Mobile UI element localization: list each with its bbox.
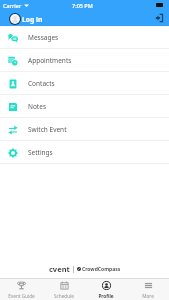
staticText: Appointments [28,56,72,65]
button[interactable]: Contacts [0,72,169,95]
button[interactable]: Notes [0,95,169,118]
button[interactable]: Profile [85,279,127,300]
staticText: Event Guide [8,293,35,299]
staticText: 7:05 PM [72,2,93,9]
staticText: cvent [49,264,70,274]
button[interactable]: Messages [0,26,169,49]
button[interactable]: Log in [0,12,47,26]
staticText: Contacts [28,79,55,88]
staticText: Schedule [54,293,74,299]
staticText: Carrier [3,2,22,9]
button[interactable]: Appointments [0,49,169,72]
staticText: Log in [22,15,43,24]
button[interactable]: Log in [151,11,166,26]
staticText: Switch Event [28,125,67,134]
staticText: CrowdCompass [82,266,121,273]
button[interactable]: Switch Event [0,118,169,141]
button[interactable]: More [127,279,169,300]
staticText: Settings [28,148,53,157]
staticText: Messages [28,33,59,42]
button[interactable]: Settings [0,141,169,164]
button[interactable]: Event Guide [0,279,43,300]
staticText: Notes [28,102,46,111]
button[interactable]: Schedule [43,279,85,300]
staticText: Profile [98,293,114,299]
staticText: More [142,293,154,299]
